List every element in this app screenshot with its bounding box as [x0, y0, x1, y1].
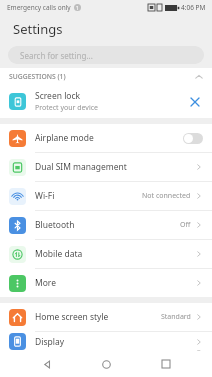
staticText: Screen lock — [35, 90, 81, 102]
staticText: Wi-Fi — [35, 190, 142, 202]
button[interactable]: Screen lock — [0, 85, 212, 118]
staticText: Display — [35, 336, 195, 348]
button[interactable]: SUGGESTIONS (1) — [0, 68, 212, 85]
button[interactable]: Back — [34, 351, 60, 377]
button[interactable]: More — [0, 269, 212, 297]
staticText: SUGGESTIONS (1) — [9, 72, 66, 81]
button[interactable]: Airplane mode — [0, 124, 212, 153]
staticText: Settings — [13, 20, 63, 38]
button[interactable]: Airplane mode toggle — [183, 133, 203, 144]
button[interactable]: Recent apps — [153, 351, 179, 377]
staticText: Bluetooth — [35, 219, 180, 231]
staticText: Airplane mode — [35, 132, 183, 144]
button[interactable]: Bluetooth — [0, 211, 212, 240]
staticText: Mobile data — [35, 248, 195, 260]
button[interactable]: Display — [0, 332, 212, 351]
button[interactable]: Dismiss suggestion — [187, 94, 203, 110]
staticText: Off — [180, 220, 191, 230]
staticText: Emergency calls only — [7, 3, 71, 12]
button[interactable]: Home screen style — [0, 303, 212, 332]
staticText: 4:06 PM — [181, 3, 206, 12]
staticText: Dual SIM management — [35, 161, 195, 173]
button[interactable]: Mobile data — [0, 240, 212, 269]
staticText: 1 — [76, 5, 79, 11]
staticText: Search for setting... — [20, 50, 93, 61]
button[interactable]: Search for setting... — [8, 46, 204, 64]
staticText: Standard — [161, 312, 191, 322]
staticText: Protect your device — [35, 103, 99, 113]
button[interactable]: Dual SIM management — [0, 153, 212, 182]
button[interactable]: Home — [93, 351, 119, 377]
staticText: Home screen style — [35, 311, 161, 323]
staticText: Not connected — [142, 191, 191, 201]
button[interactable]: Wi-Fi — [0, 182, 212, 211]
staticText: More — [35, 277, 195, 289]
